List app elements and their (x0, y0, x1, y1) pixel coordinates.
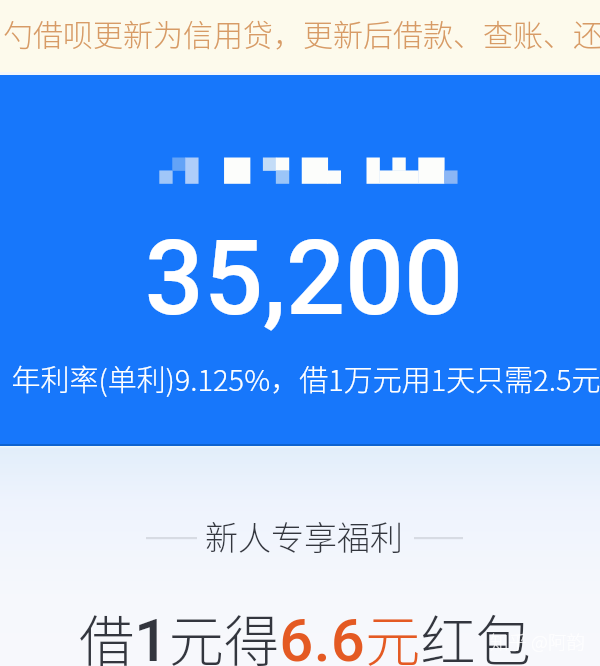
staticText: 勺借呗更新为信用贷，更新后借款、查账、还 (3, 11, 600, 54)
staticText: 知乎 @阿韵 (490, 628, 585, 655)
staticText: 35,200 (4, 218, 600, 340)
other: 可借额度 (0, 75, 600, 446)
button[interactable]: 可借额度 (0, 75, 600, 446)
staticText: 借1元得6.6元红包 (5, 597, 600, 666)
button[interactable]: 勺借呗更新为信用贷，更新后借款、查账、还 (0, 0, 600, 72)
staticText: 年利率(单利)9.125%，借1万元用1天只需2.5元 (6, 357, 600, 399)
button[interactable]: 借1元得6.6元红包 (0, 586, 600, 666)
staticText: 新人专享福利 (4, 512, 600, 560)
